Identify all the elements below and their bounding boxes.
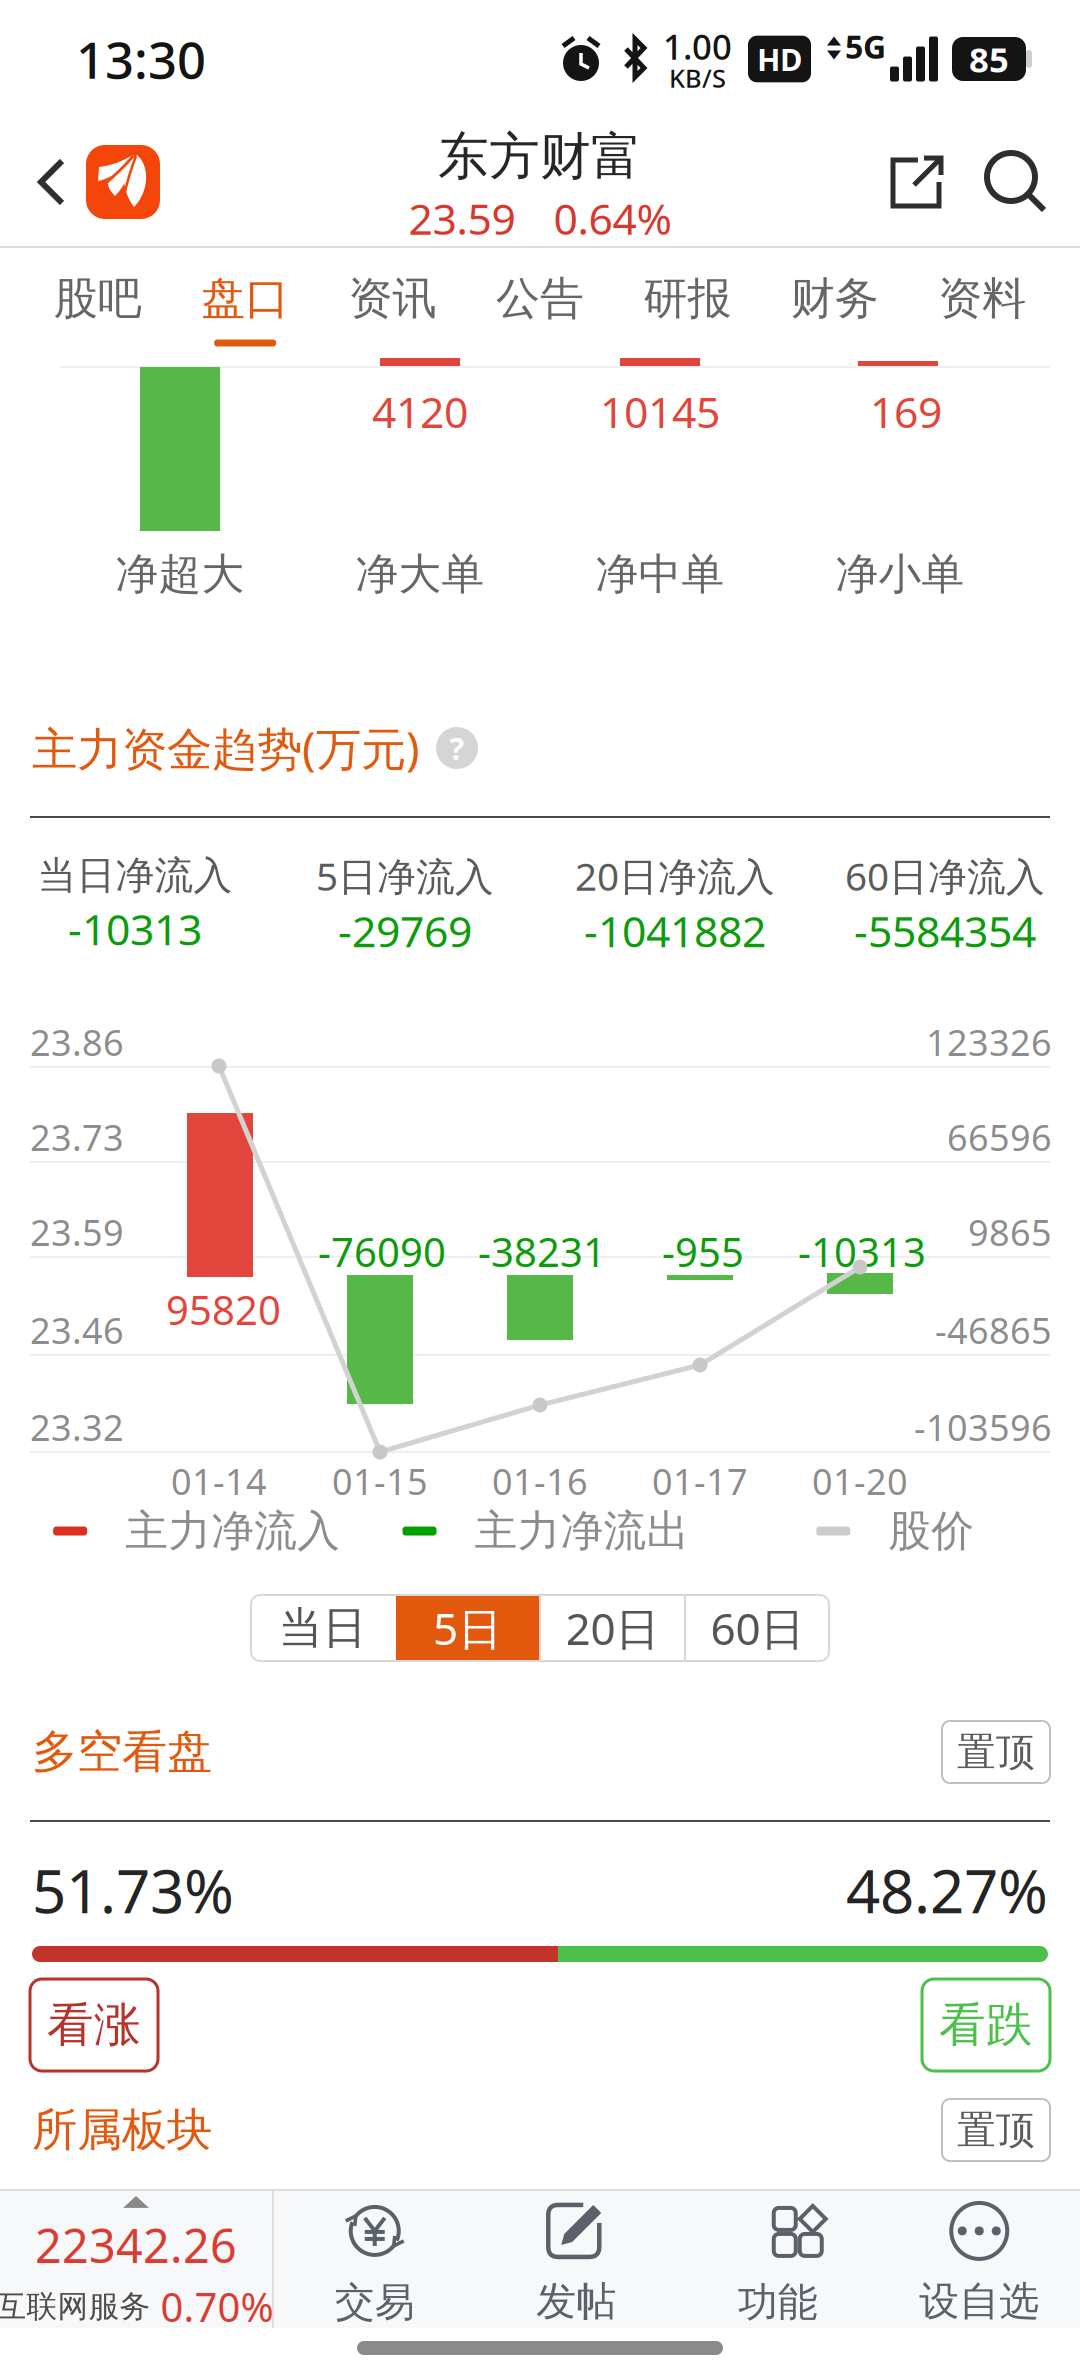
button[interactable]: 置顶 <box>942 2099 1050 2161</box>
staticText: 22342.26 <box>35 2214 237 2276</box>
staticText: 5日 <box>433 1599 502 1657</box>
staticText: 主力净流出 <box>474 1505 689 1557</box>
staticText: 交易 <box>335 2278 415 2327</box>
staticText: 10145 <box>600 383 720 440</box>
button[interactable]: 功能 <box>677 2187 878 2332</box>
staticText: 20日 <box>565 1599 659 1657</box>
staticText: -103596 <box>914 1403 1052 1451</box>
staticText: 01-15 <box>332 1457 428 1505</box>
staticText: 123326 <box>926 1018 1052 1066</box>
staticText: 互联网服务 <box>0 2288 150 2325</box>
staticText: 净超大 <box>115 548 244 600</box>
staticText: 23.59 <box>408 190 515 246</box>
staticText: 当日净流入 <box>37 852 232 899</box>
staticText: 公告 <box>496 271 584 325</box>
staticText: 51.73% <box>32 1850 234 1930</box>
staticText: 当日 <box>278 1601 366 1655</box>
staticText: 169 <box>870 383 942 440</box>
staticText: 研报 <box>643 271 731 325</box>
button[interactable]: 资讯 <box>319 249 466 356</box>
staticText: 看跌 <box>939 1996 1033 2054</box>
button[interactable]: 交易 <box>274 2187 475 2332</box>
staticText: 0.70% <box>160 2280 273 2333</box>
button[interactable]: 资料 <box>909 249 1056 356</box>
staticText: 23.86 <box>30 1018 124 1066</box>
staticText: ? <box>449 728 464 768</box>
button[interactable]: 当日 <box>251 1595 394 1661</box>
staticText: 主力资金趋势(万元) <box>32 718 420 778</box>
staticText: 净大单 <box>355 548 484 600</box>
staticText: 功能 <box>738 2278 818 2327</box>
staticText: 4120 <box>372 383 468 440</box>
button[interactable]: 60日 <box>686 1595 829 1661</box>
staticText: 23.59 <box>30 1208 124 1256</box>
staticText: 股吧 <box>54 271 142 325</box>
staticText: 设自选 <box>919 2277 1039 2326</box>
button[interactable]: 20日 <box>541 1595 684 1661</box>
staticText: 所属板块 <box>32 2102 212 2158</box>
button[interactable]: 看涨 <box>30 1979 158 2071</box>
button[interactable]: Share <box>864 138 970 226</box>
staticText: 01-14 <box>171 1457 267 1505</box>
staticText: 多空看盘 <box>32 1724 212 1780</box>
button[interactable]: 22342.26 <box>0 2186 272 2333</box>
staticText: 23.73 <box>30 1113 124 1161</box>
staticText: 资料 <box>938 271 1026 325</box>
staticText: 盘口 <box>201 271 289 325</box>
staticText: 23.32 <box>30 1403 124 1451</box>
button[interactable]: 设自选 <box>878 2187 1080 2332</box>
staticText: 主力净流入 <box>125 1505 340 1557</box>
staticText: 资讯 <box>349 271 437 325</box>
staticText: 发帖 <box>536 2277 616 2326</box>
staticText: 01-16 <box>492 1457 588 1505</box>
staticText: 5日净流入 <box>316 850 494 901</box>
staticText: 置顶 <box>957 1728 1035 1776</box>
staticText: -10313 <box>68 900 202 957</box>
button[interactable]: 盘口 <box>171 249 319 356</box>
staticText: 01-20 <box>812 1457 908 1505</box>
button[interactable]: 股吧 <box>24 249 171 356</box>
staticText: 股价 <box>888 1505 974 1557</box>
staticText: 净中单 <box>595 548 724 600</box>
button[interactable]: 5日 <box>396 1595 539 1661</box>
staticText: -76090 <box>318 1225 446 1278</box>
staticText: 23.46 <box>30 1306 124 1354</box>
staticText: 财务 <box>791 271 879 325</box>
button[interactable]: 公告 <box>466 249 614 356</box>
button[interactable]: 发帖 <box>475 2187 677 2332</box>
button[interactable]: 财务 <box>761 249 908 356</box>
button[interactable]: 看跌 <box>922 1979 1050 2071</box>
staticText: 95820 <box>166 1283 281 1336</box>
staticText: 0.64% <box>553 190 671 246</box>
staticText: 60日净流入 <box>845 850 1045 901</box>
button[interactable]: 研报 <box>614 249 761 356</box>
staticText: 13:30 <box>76 25 206 93</box>
staticText: -46865 <box>935 1306 1052 1354</box>
staticText: 66596 <box>947 1113 1052 1161</box>
staticText: 60日 <box>710 1599 804 1657</box>
staticText: HD <box>757 39 802 79</box>
staticText: 1.00 <box>663 23 732 69</box>
staticText: 85 <box>969 36 1009 82</box>
staticText: -38231 <box>478 1225 606 1278</box>
staticText: -10313 <box>798 1225 926 1278</box>
staticText: 东方财富 <box>438 126 642 188</box>
staticText: -1041882 <box>584 902 766 959</box>
staticText: 看涨 <box>47 1996 141 2054</box>
staticText: 置顶 <box>957 2106 1035 2154</box>
staticText: -29769 <box>338 902 472 959</box>
staticText: 48.27% <box>846 1850 1048 1930</box>
staticText: 01-17 <box>652 1457 748 1505</box>
staticText: -5584354 <box>854 902 1036 959</box>
staticText: 净小单 <box>835 548 964 600</box>
staticText: 9865 <box>968 1208 1052 1256</box>
staticText: 5G <box>845 25 886 67</box>
staticText: 20日净流入 <box>575 850 775 901</box>
button[interactable]: Search <box>970 138 1062 226</box>
staticText: KB/S <box>669 61 726 95</box>
staticText: -955 <box>662 1225 744 1278</box>
button[interactable]: 置顶 <box>942 1721 1050 1783</box>
button[interactable]: Back <box>16 133 86 231</box>
